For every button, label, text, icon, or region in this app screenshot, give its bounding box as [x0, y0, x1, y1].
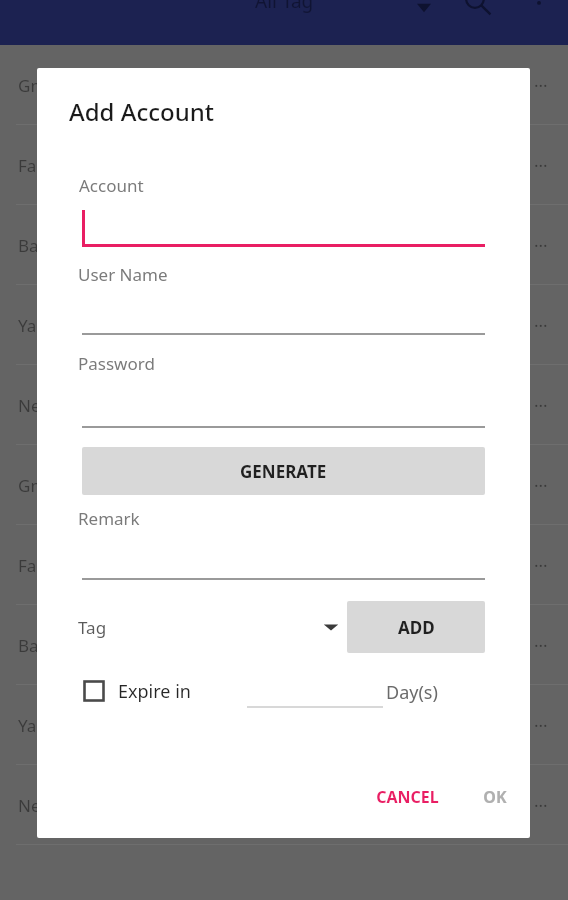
staticText: Expire in [118, 679, 191, 704]
staticText: Bank [18, 634, 59, 657]
staticText: Facebook [18, 554, 95, 577]
staticText: ··· [534, 394, 548, 417]
button[interactable]: Tag [78, 601, 348, 653]
button[interactable] [247, 671, 383, 711]
staticText: OK [483, 786, 507, 808]
button[interactable]: OK [464, 773, 526, 821]
button[interactable]: GENERATE [82, 447, 485, 495]
staticText: ··· [534, 794, 548, 817]
staticText: Remark [78, 507, 140, 530]
staticText: ··· [534, 554, 548, 577]
staticText: ··· [534, 234, 548, 257]
button[interactable]: ADD [347, 601, 485, 653]
staticText: Password [78, 352, 155, 375]
staticText: ··· [534, 634, 548, 657]
button[interactable]: Netflix [0, 365, 568, 445]
staticText: ··· [534, 714, 548, 737]
button[interactable]: Yahoo [0, 285, 568, 365]
staticText: Tag [78, 616, 107, 639]
staticText: ··· [534, 74, 548, 97]
button[interactable]: Bank [0, 605, 568, 685]
staticText: Account [79, 174, 144, 197]
staticText: Add Account [69, 95, 214, 128]
staticText: Yahoo [18, 314, 68, 337]
staticText: CANCEL [376, 786, 439, 808]
button[interactable] [82, 286, 485, 334]
staticText: ··· [534, 314, 548, 337]
staticText: ··· [534, 154, 548, 177]
staticText: Day(s) [386, 680, 438, 705]
staticText: GENERATE [240, 460, 327, 483]
button[interactable]: Expire in [83, 671, 191, 711]
staticText: All Tag [255, 0, 314, 14]
staticText: User Name [78, 263, 168, 286]
button[interactable]: Gmail [0, 445, 568, 525]
button[interactable]: Bank [0, 205, 568, 285]
staticText: Netflix [18, 394, 71, 417]
staticText: Bank [18, 234, 59, 257]
staticText: Facebook [18, 154, 95, 177]
staticText: ADD [398, 616, 435, 639]
button[interactable]: Facebook [0, 125, 568, 205]
staticText: Netflix [18, 794, 71, 817]
button[interactable]: CANCEL [355, 773, 460, 821]
staticText: Gmail [18, 74, 65, 97]
button[interactable]: Yahoo [0, 685, 568, 765]
button[interactable]: More options [524, 0, 554, 14]
staticText: Yahoo [18, 714, 68, 737]
button[interactable]: Netflix [0, 765, 568, 845]
button[interactable] [82, 200, 485, 250]
staticText: ··· [534, 474, 548, 497]
button[interactable]: Search [460, 0, 494, 18]
button[interactable]: Gmail [0, 45, 568, 125]
button[interactable]: Facebook [0, 525, 568, 605]
button[interactable]: Filter tag [410, 0, 438, 20]
staticText: Gmail [18, 474, 65, 497]
